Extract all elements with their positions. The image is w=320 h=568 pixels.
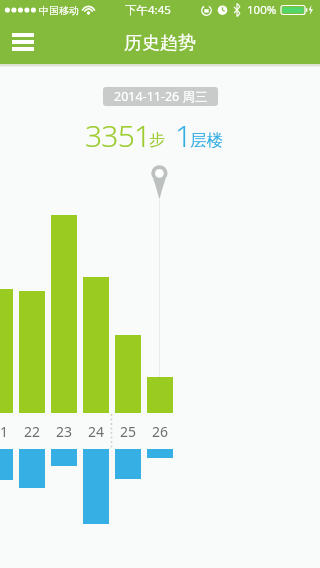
staticText: 21 <box>0 422 9 441</box>
staticText: 下午4:45 <box>125 2 171 18</box>
staticText: 26 <box>152 422 169 441</box>
staticText: 22 <box>24 422 41 441</box>
staticText: 层楼 <box>190 130 223 151</box>
staticText: 历史趋势 <box>124 32 196 55</box>
staticText: 23 <box>56 422 73 441</box>
staticText: 中国移动 <box>39 4 79 17</box>
staticText: 步 <box>149 130 165 150</box>
button[interactable]: 2014-11-26 周三 <box>103 87 218 106</box>
staticText: 100% <box>247 2 277 18</box>
staticText: 3351 <box>85 115 151 156</box>
staticText: 24 <box>88 422 105 441</box>
staticText: 2014-11-26 周三 <box>114 88 208 105</box>
button[interactable] <box>6 28 40 56</box>
staticText: 25 <box>120 422 137 441</box>
staticText: 1 <box>175 115 193 156</box>
